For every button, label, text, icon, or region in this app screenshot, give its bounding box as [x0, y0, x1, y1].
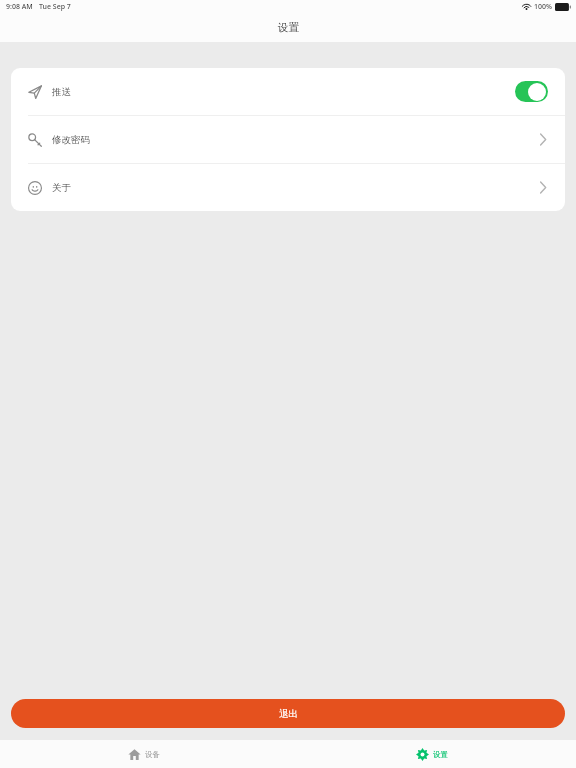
- staticText: 退出: [279, 708, 298, 720]
- staticText: 推送: [52, 86, 71, 98]
- button[interactable]: 修改密码: [11, 116, 565, 163]
- staticText: 设备: [145, 750, 160, 759]
- staticText: 9:08 AM: [6, 2, 33, 12]
- staticText: 修改密码: [52, 134, 90, 146]
- button[interactable]: 设置: [288, 740, 576, 768]
- staticText: 设置: [433, 750, 448, 759]
- button[interactable]: 关于: [11, 164, 565, 211]
- staticText: 设置: [278, 21, 299, 34]
- staticText: 关于: [52, 182, 71, 194]
- button[interactable]: Push notifications toggle: [515, 81, 548, 102]
- button[interactable]: 退出: [11, 699, 565, 728]
- button[interactable]: 推送: [11, 68, 565, 115]
- button[interactable]: 设备: [0, 740, 288, 768]
- staticText: 100%: [534, 2, 552, 12]
- staticText: Tue Sep 7: [39, 2, 71, 12]
